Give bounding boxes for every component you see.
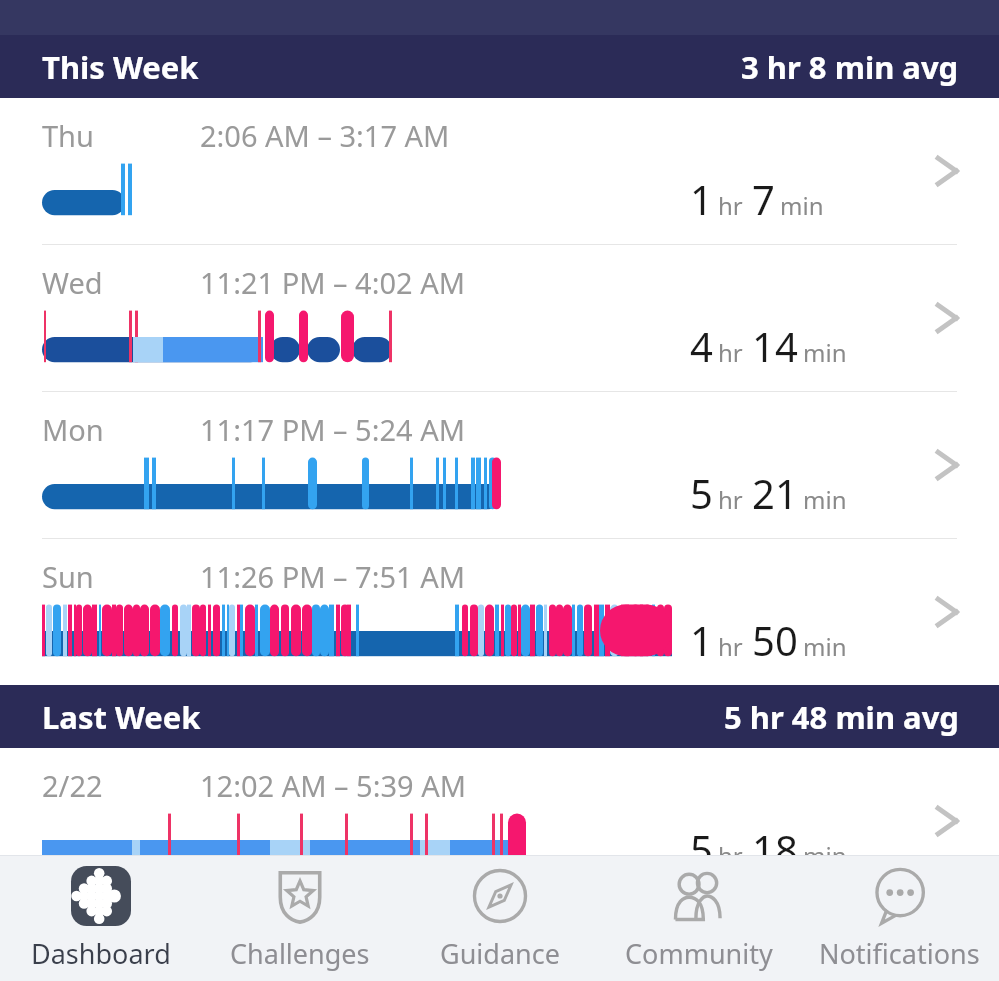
staticText: 21 [752, 466, 798, 520]
button[interactable]: Guidance [401, 859, 599, 978]
staticText: hr [718, 630, 743, 663]
staticText: 12:02 AM – 5:39 AM [200, 766, 466, 805]
staticText: hr [718, 336, 743, 369]
button[interactable]: Community [600, 859, 798, 978]
staticText: hr [718, 839, 743, 872]
staticText: Challenges [230, 935, 370, 972]
button[interactable]: 2/22 [0, 748, 999, 894]
staticText: This Week [42, 46, 199, 88]
button[interactable]: Notifications [800, 859, 998, 978]
staticText: Notifications [819, 935, 980, 972]
button[interactable]: Challenges [201, 859, 399, 978]
staticText: 11:17 PM – 5:24 AM [200, 410, 466, 449]
staticText: 2:06 AM – 3:17 AM [200, 116, 450, 155]
staticText: 5 hr 48 min avg [724, 696, 959, 738]
button[interactable]: Dashboard [2, 859, 200, 978]
staticText: 1 [690, 613, 713, 667]
staticText: hr [718, 189, 743, 222]
button[interactable]: Mon [0, 392, 999, 538]
staticText: Thu [42, 116, 94, 155]
staticText: 3 hr 8 min avg [741, 46, 959, 88]
staticText: Sun [42, 557, 94, 596]
staticText: 5 [690, 822, 713, 876]
button[interactable]: Sun [0, 539, 999, 685]
staticText: 4 [690, 319, 713, 373]
button[interactable]: This Week [0, 35, 999, 98]
staticText: 5 [690, 466, 713, 520]
staticText: 7 [752, 172, 775, 226]
staticText: Wed [42, 263, 103, 302]
staticText: min [780, 189, 824, 222]
staticText: 2/22 [42, 766, 103, 805]
staticText: 18 [752, 822, 798, 876]
staticText: min [803, 483, 847, 516]
button[interactable]: Last Week [0, 685, 999, 748]
staticText: hr [718, 483, 743, 516]
staticText: 11:21 PM – 4:02 AM [200, 263, 466, 302]
staticText: Dashboard [31, 935, 171, 972]
button[interactable]: Thu [0, 98, 999, 244]
staticText: Community [625, 935, 773, 972]
staticText: min [803, 336, 847, 369]
staticText: min [803, 630, 847, 663]
staticText: 50 [752, 613, 798, 667]
staticText: Guidance [440, 935, 560, 972]
button[interactable]: Wed [0, 245, 999, 391]
staticText: 11:26 PM – 7:51 AM [200, 557, 466, 596]
staticText: Last Week [42, 696, 201, 738]
staticText: Mon [42, 410, 104, 449]
staticText: 14 [752, 319, 798, 373]
staticText: 1 [690, 172, 713, 226]
staticText: min [803, 839, 847, 872]
